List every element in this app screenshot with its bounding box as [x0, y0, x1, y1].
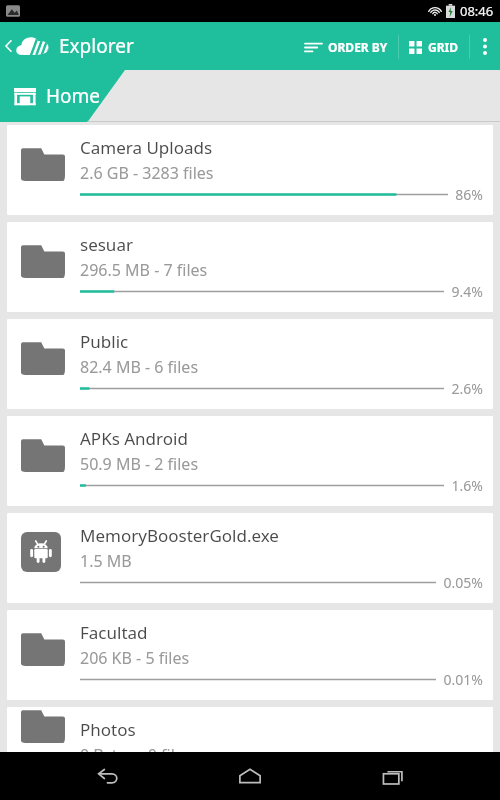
staticText: 0.05% [443, 573, 483, 592]
staticText: 1.5 MB [80, 550, 132, 572]
staticText: 2.6% [451, 379, 483, 398]
button[interactable]: Explorer [0, 33, 142, 59]
button[interactable]: Recent apps [357, 756, 431, 797]
staticText: Home [46, 83, 101, 109]
button[interactable]: sesuar [7, 222, 493, 312]
staticText: 296.5 MB - 7 files [80, 259, 208, 281]
staticText: 86% [455, 185, 483, 204]
button[interactable]: ORDER BY [295, 27, 398, 67]
staticText: 1.6% [451, 476, 483, 495]
button[interactable]: MemoryBoosterGold.exe [7, 513, 493, 603]
staticText: 08:46 [460, 2, 494, 20]
button[interactable]: APKs Android [7, 416, 493, 506]
staticText: GRID [428, 39, 459, 55]
button[interactable]: Photos [7, 707, 493, 757]
button[interactable]: Camera Uploads [7, 125, 493, 215]
staticText: 0.01% [443, 670, 483, 689]
button[interactable]: GRID [399, 27, 469, 67]
staticText: 2.6 GB - 3283 files [80, 162, 214, 184]
staticText: Facultad [80, 621, 148, 644]
button[interactable]: Home [0, 77, 115, 115]
button[interactable]: Public [7, 319, 493, 409]
staticText: 0 Bytes - 0 files [80, 744, 192, 757]
button[interactable]: Home [213, 756, 287, 796]
staticText: ORDER BY [328, 39, 388, 55]
staticText: 206 KB - 5 files [80, 647, 190, 669]
staticText: sesuar [80, 233, 133, 256]
staticText: 50.9 MB - 2 files [80, 453, 199, 475]
staticText: Camera Uploads [80, 136, 213, 159]
staticText: Explorer [59, 33, 134, 59]
button[interactable]: More options [470, 26, 500, 67]
staticText: Photos [80, 718, 136, 741]
staticText: APKs Android [80, 427, 188, 450]
staticText: 9.4% [451, 282, 483, 301]
staticText: 82.4 MB - 6 files [80, 356, 199, 378]
staticText: Public [80, 330, 129, 353]
staticText: MemoryBoosterGold.exe [80, 524, 279, 547]
button[interactable]: Facultad [7, 610, 493, 700]
button[interactable]: Back [70, 755, 144, 797]
